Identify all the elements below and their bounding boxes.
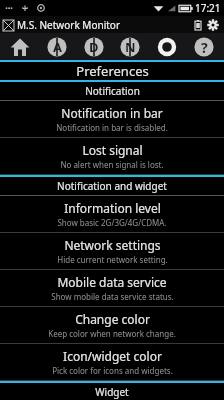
staticText: Notification xyxy=(85,84,140,98)
button[interactable]: Home xyxy=(3,33,37,60)
button[interactable]: Change color xyxy=(0,307,224,343)
staticText: A xyxy=(53,38,62,56)
staticText: M.S. Network Monitor xyxy=(17,18,121,32)
button[interactable]: Mobile data service xyxy=(0,270,224,306)
staticText: Network settings xyxy=(64,237,161,253)
button[interactable]: Help xyxy=(187,33,221,60)
staticText: Icon/widget color xyxy=(63,348,162,364)
button[interactable]: Battery xyxy=(192,19,204,31)
button[interactable]: Notification in bar xyxy=(0,101,224,137)
button[interactable]: Analog xyxy=(40,33,74,60)
staticText: Widget xyxy=(95,385,129,399)
button[interactable]: Notification xyxy=(0,82,224,100)
staticText: N xyxy=(125,38,136,56)
staticText: Lost signal xyxy=(82,142,143,158)
button[interactable]: Lost signal xyxy=(0,138,224,174)
staticText: Change color xyxy=(75,311,150,327)
staticText: 17:21 xyxy=(195,1,221,15)
staticText: Information level xyxy=(64,200,161,216)
staticText: Hide current network setting. xyxy=(57,254,168,265)
staticText: No alert when signal is lost. xyxy=(60,159,164,170)
button[interactable]: Preferences xyxy=(0,62,224,80)
button[interactable]: Network settings xyxy=(0,233,224,269)
button[interactable]: M.S. Network Monitor xyxy=(0,16,224,33)
staticText: Show basic 2G/3G/4G/CDMA. xyxy=(57,217,167,228)
staticText: Pick color for icons and widgets. xyxy=(52,365,173,376)
staticText: ? xyxy=(201,38,208,57)
button[interactable]: Widget xyxy=(0,383,224,400)
staticText: Notification in bar xyxy=(61,105,163,121)
staticText: Show mobile data service status. xyxy=(51,291,174,302)
staticText: D xyxy=(89,38,99,56)
staticText: Keep color when network change. xyxy=(48,328,176,339)
button[interactable]: Network xyxy=(113,33,147,60)
staticText: Preferences xyxy=(76,62,149,80)
button[interactable]: Settings xyxy=(206,18,220,32)
staticText: Notification and widget xyxy=(57,179,167,193)
button[interactable]: Icon/widget color xyxy=(0,344,224,380)
button[interactable]: Information level xyxy=(0,196,224,232)
button[interactable]: Digital xyxy=(77,33,111,60)
button[interactable]: Notification and widget xyxy=(0,177,224,195)
button[interactable]: Record xyxy=(150,33,184,60)
staticText: Notification in bar is disabled. xyxy=(56,122,168,133)
staticText: Mobile data service xyxy=(57,274,167,290)
